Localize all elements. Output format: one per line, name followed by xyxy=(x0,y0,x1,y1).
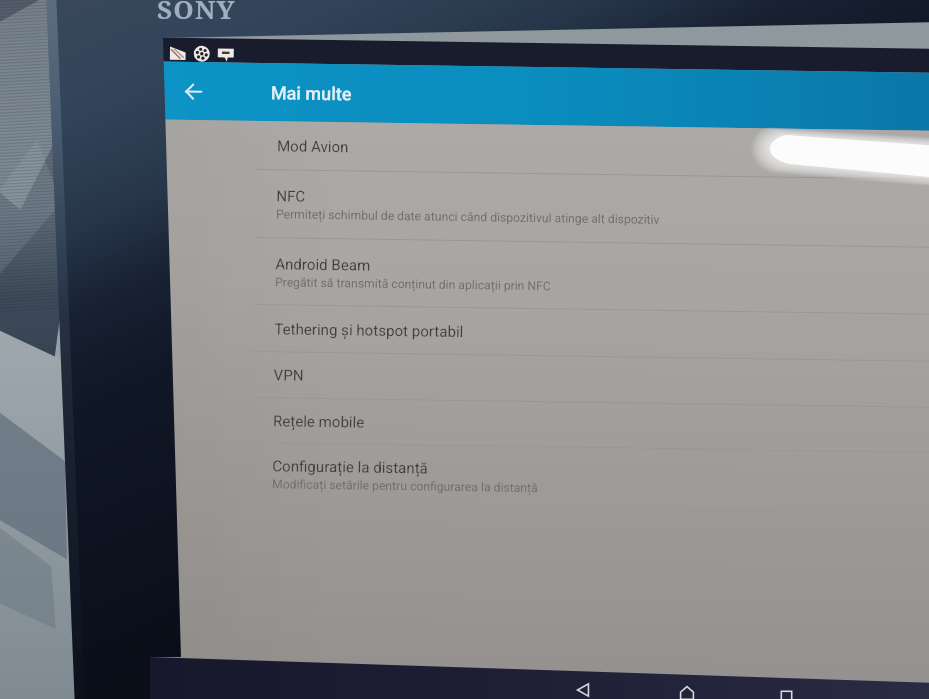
button[interactable]: Back xyxy=(562,669,604,699)
button[interactable]: Recent apps xyxy=(765,675,807,699)
staticText: Pregătit să transmită conținut din aplic… xyxy=(275,275,551,293)
button[interactable]: Tethering și hotspot portabil xyxy=(155,304,929,362)
staticText: Configurație la distanță xyxy=(272,457,428,478)
button[interactable]: NFC xyxy=(157,169,929,248)
button[interactable]: VPN xyxy=(154,351,929,408)
staticText: SONY xyxy=(157,0,236,26)
button[interactable]: Configurație la distanță xyxy=(153,441,929,515)
staticText: NFC xyxy=(276,187,305,206)
staticText: Rețele mobile xyxy=(273,412,365,432)
staticText: Modificați setările pentru configurarea … xyxy=(272,477,538,495)
staticText: Tethering și hotspot portabil xyxy=(274,320,464,341)
staticText: Permiteți schimbul de date atunci când d… xyxy=(276,207,660,227)
staticText: VPN xyxy=(273,366,304,385)
button[interactable]: Home xyxy=(666,672,708,699)
button[interactable]: Mod Avion xyxy=(158,120,929,180)
button[interactable]: Android Beam xyxy=(156,237,929,315)
staticText: Mai multe xyxy=(271,82,352,104)
button[interactable]: Rețele mobile xyxy=(154,396,929,453)
button[interactable]: Back xyxy=(170,69,215,113)
staticText: Mod Avion xyxy=(277,137,349,156)
staticText: Android Beam xyxy=(275,255,371,275)
